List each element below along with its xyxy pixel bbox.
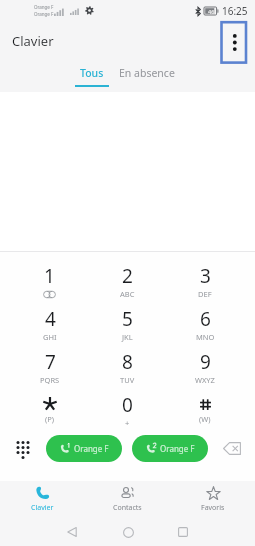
staticText: TUV [120,375,135,385]
button[interactable]: 5 [88,299,166,342]
staticText: 9 [200,349,211,375]
staticText: Clavier [12,32,54,50]
staticText: Clavier [31,503,54,513]
staticText: 6 [200,306,211,332]
button[interactable]: (W) [166,385,244,428]
button[interactable]: 2 [88,256,166,299]
staticText: PQRS [40,375,60,385]
button[interactable]: Backspace [208,435,255,462]
button[interactable]: 4 [11,299,88,342]
button[interactable]: 1 [11,256,88,299]
button[interactable]: (P) [11,385,88,428]
button[interactable]: 9 [166,342,244,385]
staticText: 2 [122,263,133,289]
staticText: DEF [198,289,212,299]
button[interactable]: Tous [75,64,109,87]
staticText: MNO [196,332,215,342]
staticText: Favoris [201,503,225,513]
staticText: (W) [199,414,211,424]
staticText: 0 [122,392,133,418]
staticText: 7 [45,349,56,375]
staticText: 5 [122,306,133,332]
staticText: Contacts [113,503,142,513]
staticText: ABC [120,289,135,299]
button[interactable]: Favoris [170,481,255,518]
staticText: WXYZ [195,375,215,385]
staticText: 1 [44,263,55,289]
staticText: 4 [45,306,56,332]
button[interactable]: 7 [11,342,88,385]
staticText: 3 [200,263,211,289]
staticText: Orange F [160,443,195,454]
button[interactable]: Recents [173,522,193,542]
button[interactable]: 0 [88,385,166,428]
button[interactable]: Clavier [0,481,85,518]
staticText: Orange F [74,443,109,454]
staticText: 8 [122,349,133,375]
button[interactable]: Home [118,522,138,542]
staticText: + [125,418,130,428]
button[interactable]: More options [220,21,246,64]
staticText: Orange F [34,4,54,10]
staticText: (P) [45,414,55,424]
staticText: JKL [122,332,133,342]
staticText: Orange F [34,11,54,17]
button[interactable]: Dialpad [0,435,46,462]
button[interactable]: 3 [166,256,244,299]
button[interactable]: 6 [166,299,244,342]
button[interactable]: Contacts [85,481,170,518]
staticText: En absence [119,66,175,80]
staticText: 46 [208,8,215,15]
button[interactable]: Orange F [46,435,122,462]
button[interactable]: Orange F [132,435,208,462]
staticText: Tous [80,66,104,80]
button[interactable]: 8 [88,342,166,385]
button[interactable]: En absence [114,64,180,82]
button[interactable]: Back [62,522,82,542]
staticText: GHI [43,332,57,342]
staticText: 16:25 [222,4,248,18]
